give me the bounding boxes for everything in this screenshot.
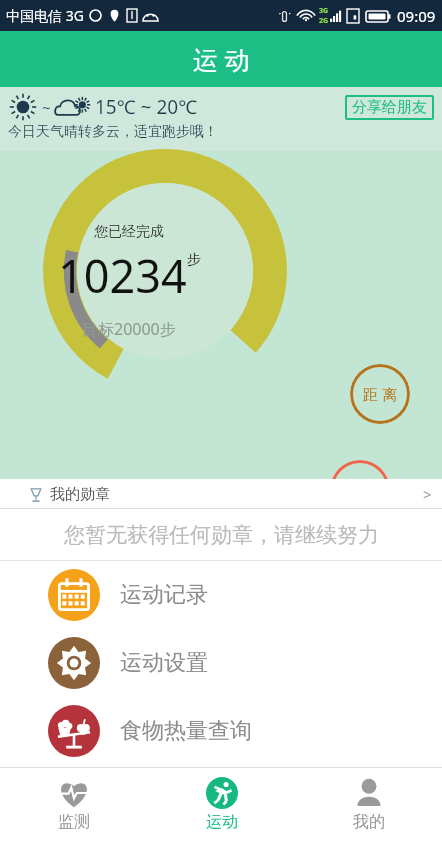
staticText: 步 (187, 251, 201, 269)
staticText: 2G (319, 16, 329, 26)
button[interactable]: 分享给朋友 (345, 95, 434, 120)
staticText: 距 离 (363, 384, 397, 404)
button[interactable]: 开始跑步 (296, 553, 442, 599)
button[interactable]: 运动设置 (0, 629, 442, 697)
staticText: 目标20000步 (82, 318, 176, 340)
button[interactable]: 运动 (148, 767, 295, 841)
button[interactable]: 我的 (295, 767, 442, 841)
staticText: 我的勋章 (50, 485, 110, 504)
staticText: ~ (38, 97, 55, 117)
staticText: 中国电信 3G (6, 6, 84, 25)
button[interactable]: 运动记录 (0, 561, 442, 629)
staticText: > (423, 484, 432, 504)
staticText: 分享给朋友 (352, 98, 427, 117)
staticText: 您已经完成 (94, 223, 164, 241)
staticText: 09:09 (397, 6, 436, 26)
staticText: 3G (319, 6, 329, 16)
staticText: 运动记录 (120, 581, 208, 609)
button[interactable]: 我的勋章 (0, 479, 442, 509)
staticText: 15℃ ~ 20℃ (95, 94, 198, 120)
staticText: 10234 (58, 245, 187, 306)
staticText: 运动设置 (120, 649, 208, 677)
button[interactable]: 监测 (0, 767, 148, 841)
staticText: 监测 (58, 812, 90, 832)
staticText: 今日天气晴转多云，适宜跑步哦！ (8, 123, 218, 141)
button[interactable]: 距 离 (350, 364, 410, 424)
staticText: 我的 (353, 812, 385, 832)
staticText: 运 动 (193, 42, 250, 76)
button[interactable]: 卡路里 (330, 460, 390, 520)
staticText: 您暂无获得任何勋章，请继续努力 (64, 522, 379, 548)
staticText: 运动 (206, 812, 238, 832)
button[interactable]: 食物热量查询 (0, 697, 442, 765)
staticText: 食物热量查询 (120, 717, 252, 745)
